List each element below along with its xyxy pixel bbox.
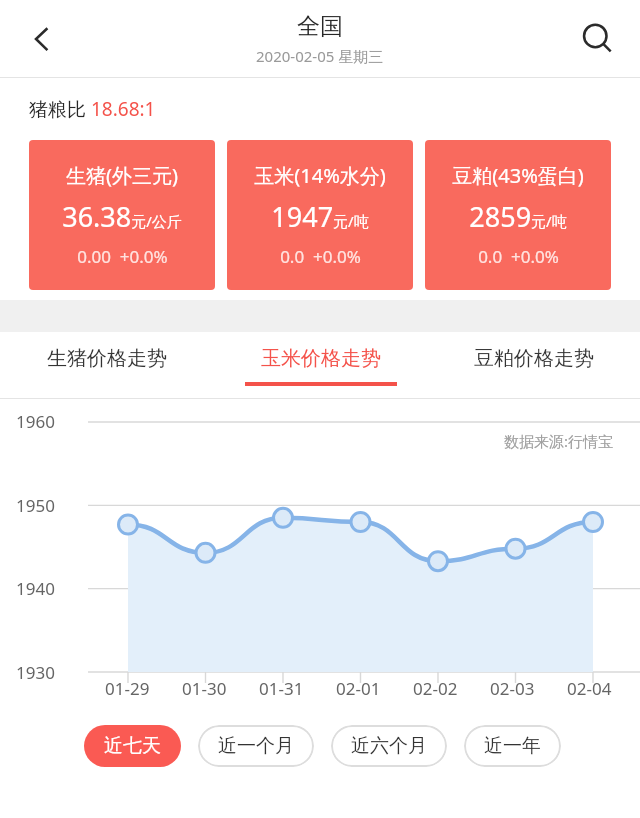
staticText: 近七天: [104, 734, 161, 758]
staticText: 36.38元/公斤: [62, 198, 182, 235]
staticText: 0.0 +0.0%: [280, 245, 361, 268]
staticText: 生猪价格走势: [47, 346, 167, 371]
staticText: 生猪(外三元): [66, 162, 178, 189]
button[interactable]: 玉米(14%水分): [227, 140, 413, 290]
button[interactable]: 近六个月: [331, 725, 447, 767]
button[interactable]: 近一年: [464, 725, 561, 767]
button[interactable]: Search: [570, 11, 626, 67]
staticText: 0.0 +0.0%: [478, 245, 559, 268]
staticText: 02-03: [490, 677, 535, 700]
staticText: 1947元/吨: [271, 198, 369, 235]
staticText: 猪粮比 18.68:1: [29, 96, 156, 122]
staticText: 玉米价格走势: [261, 346, 381, 371]
button[interactable]: 近一个月: [198, 725, 314, 767]
staticText: 0.00 +0.0%: [77, 245, 168, 268]
staticText: 1960: [16, 410, 55, 433]
staticText: 1940: [16, 577, 55, 600]
staticText: 1930: [16, 661, 55, 684]
staticText: 近六个月: [351, 734, 427, 758]
button[interactable]: 生猪价格走势: [0, 332, 214, 398]
staticText: 01-30: [182, 677, 227, 700]
button[interactable]: 豆粕(43%蛋白): [425, 140, 611, 290]
staticText: 近一年: [484, 734, 541, 758]
staticText: 02-02: [413, 677, 458, 700]
staticText: 豆粕(43%蛋白): [452, 162, 584, 189]
staticText: 玉米(14%水分): [254, 162, 386, 189]
button[interactable]: 豆粕价格走势: [427, 332, 640, 398]
staticText: 豆粕价格走势: [474, 346, 594, 371]
staticText: 近一个月: [218, 734, 294, 758]
staticText: 01-29: [105, 677, 150, 700]
button[interactable]: 玉米价格走势: [214, 332, 427, 398]
staticText: 2859元/吨: [469, 198, 567, 235]
staticText: 2020-02-05 星期三: [256, 46, 384, 66]
staticText: 01-31: [259, 677, 304, 700]
button[interactable]: 生猪(外三元): [29, 140, 215, 290]
button[interactable]: 近七天: [84, 725, 181, 767]
staticText: 数据来源:行情宝: [504, 431, 614, 451]
staticText: 1950: [16, 494, 55, 517]
staticText: 02-04: [567, 677, 612, 700]
staticText: 02-01: [336, 677, 381, 700]
button[interactable]: Back: [14, 11, 70, 67]
staticText: 全国: [297, 12, 343, 41]
